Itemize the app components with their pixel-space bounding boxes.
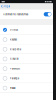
staticText: Atgal <box>3 5 10 8</box>
button[interactable]: Šiauliai <box>0 54 53 64</box>
staticText: Šiauliai <box>10 57 19 60</box>
button[interactable]: Automatinis nustatymas <box>0 9 53 19</box>
button[interactable]: Atgal <box>0 3 10 9</box>
button[interactable]: Trakai <box>0 83 53 93</box>
button[interactable]: Palanga <box>0 73 53 83</box>
staticText: Kaunas <box>10 38 17 41</box>
staticText: Vilnius <box>10 28 18 31</box>
staticText: Palanga <box>10 77 19 80</box>
button[interactable]: Panevėžys <box>0 64 53 73</box>
staticText: Panevėžys <box>10 67 20 70</box>
staticText: Klaipėda <box>10 48 21 51</box>
staticText: Trakai <box>10 87 16 90</box>
staticText: Automatinis nustatymas <box>3 13 28 16</box>
button[interactable]: Kaunas <box>0 35 53 44</box>
button[interactable]: Vilnius <box>0 25 53 35</box>
button[interactable]: Klaipėda <box>0 44 53 54</box>
